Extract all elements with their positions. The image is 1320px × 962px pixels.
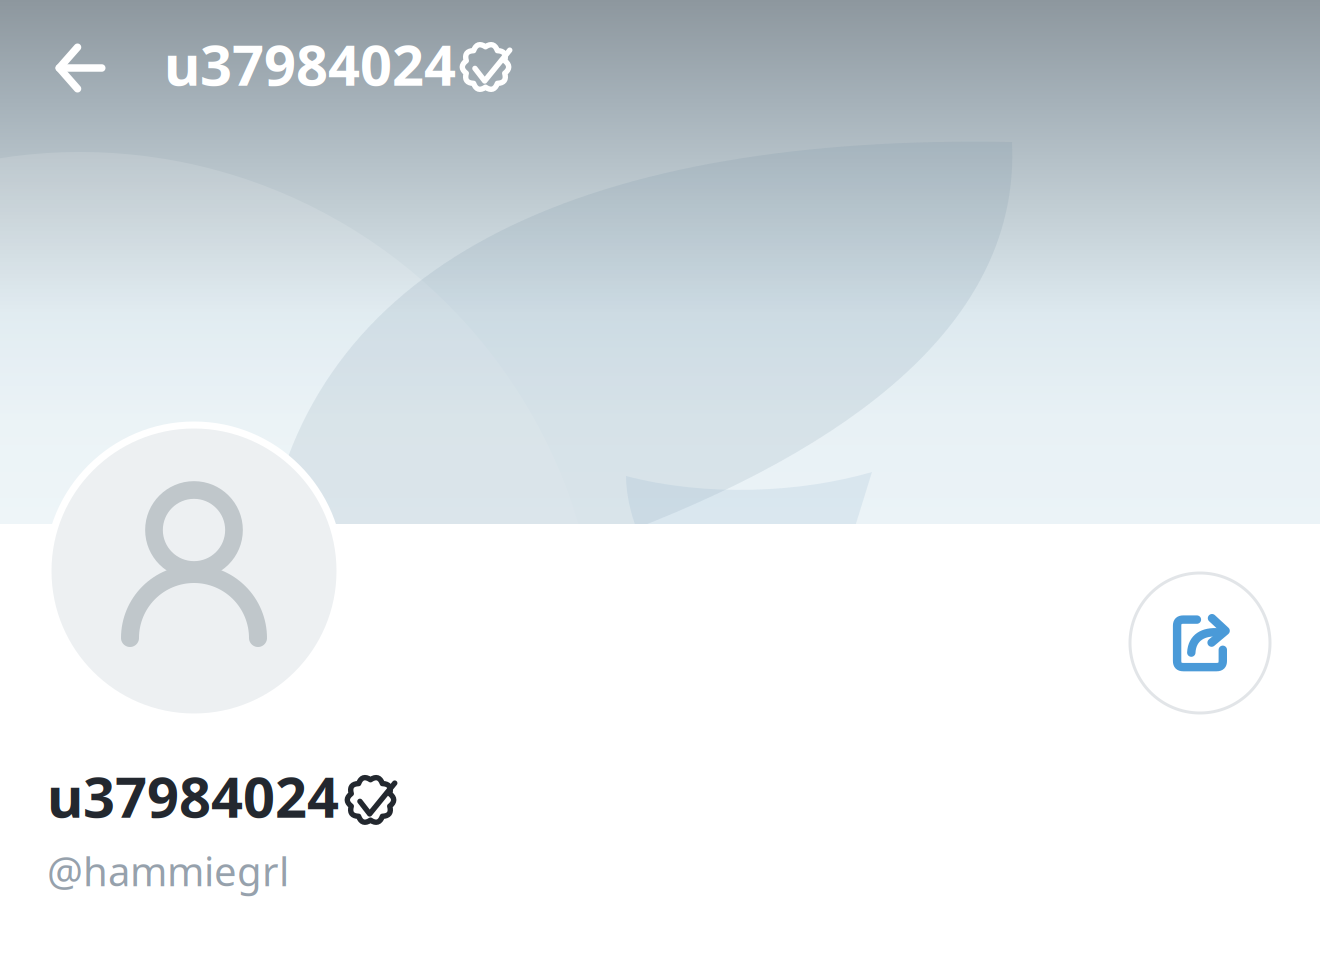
staticText: @hammiegrl bbox=[47, 844, 289, 897]
button[interactable]: Share bbox=[1128, 571, 1271, 714]
staticText: u37984024 bbox=[47, 759, 339, 833]
staticText: u37984024 bbox=[164, 27, 456, 101]
button[interactable]: Back bbox=[34, 22, 126, 114]
